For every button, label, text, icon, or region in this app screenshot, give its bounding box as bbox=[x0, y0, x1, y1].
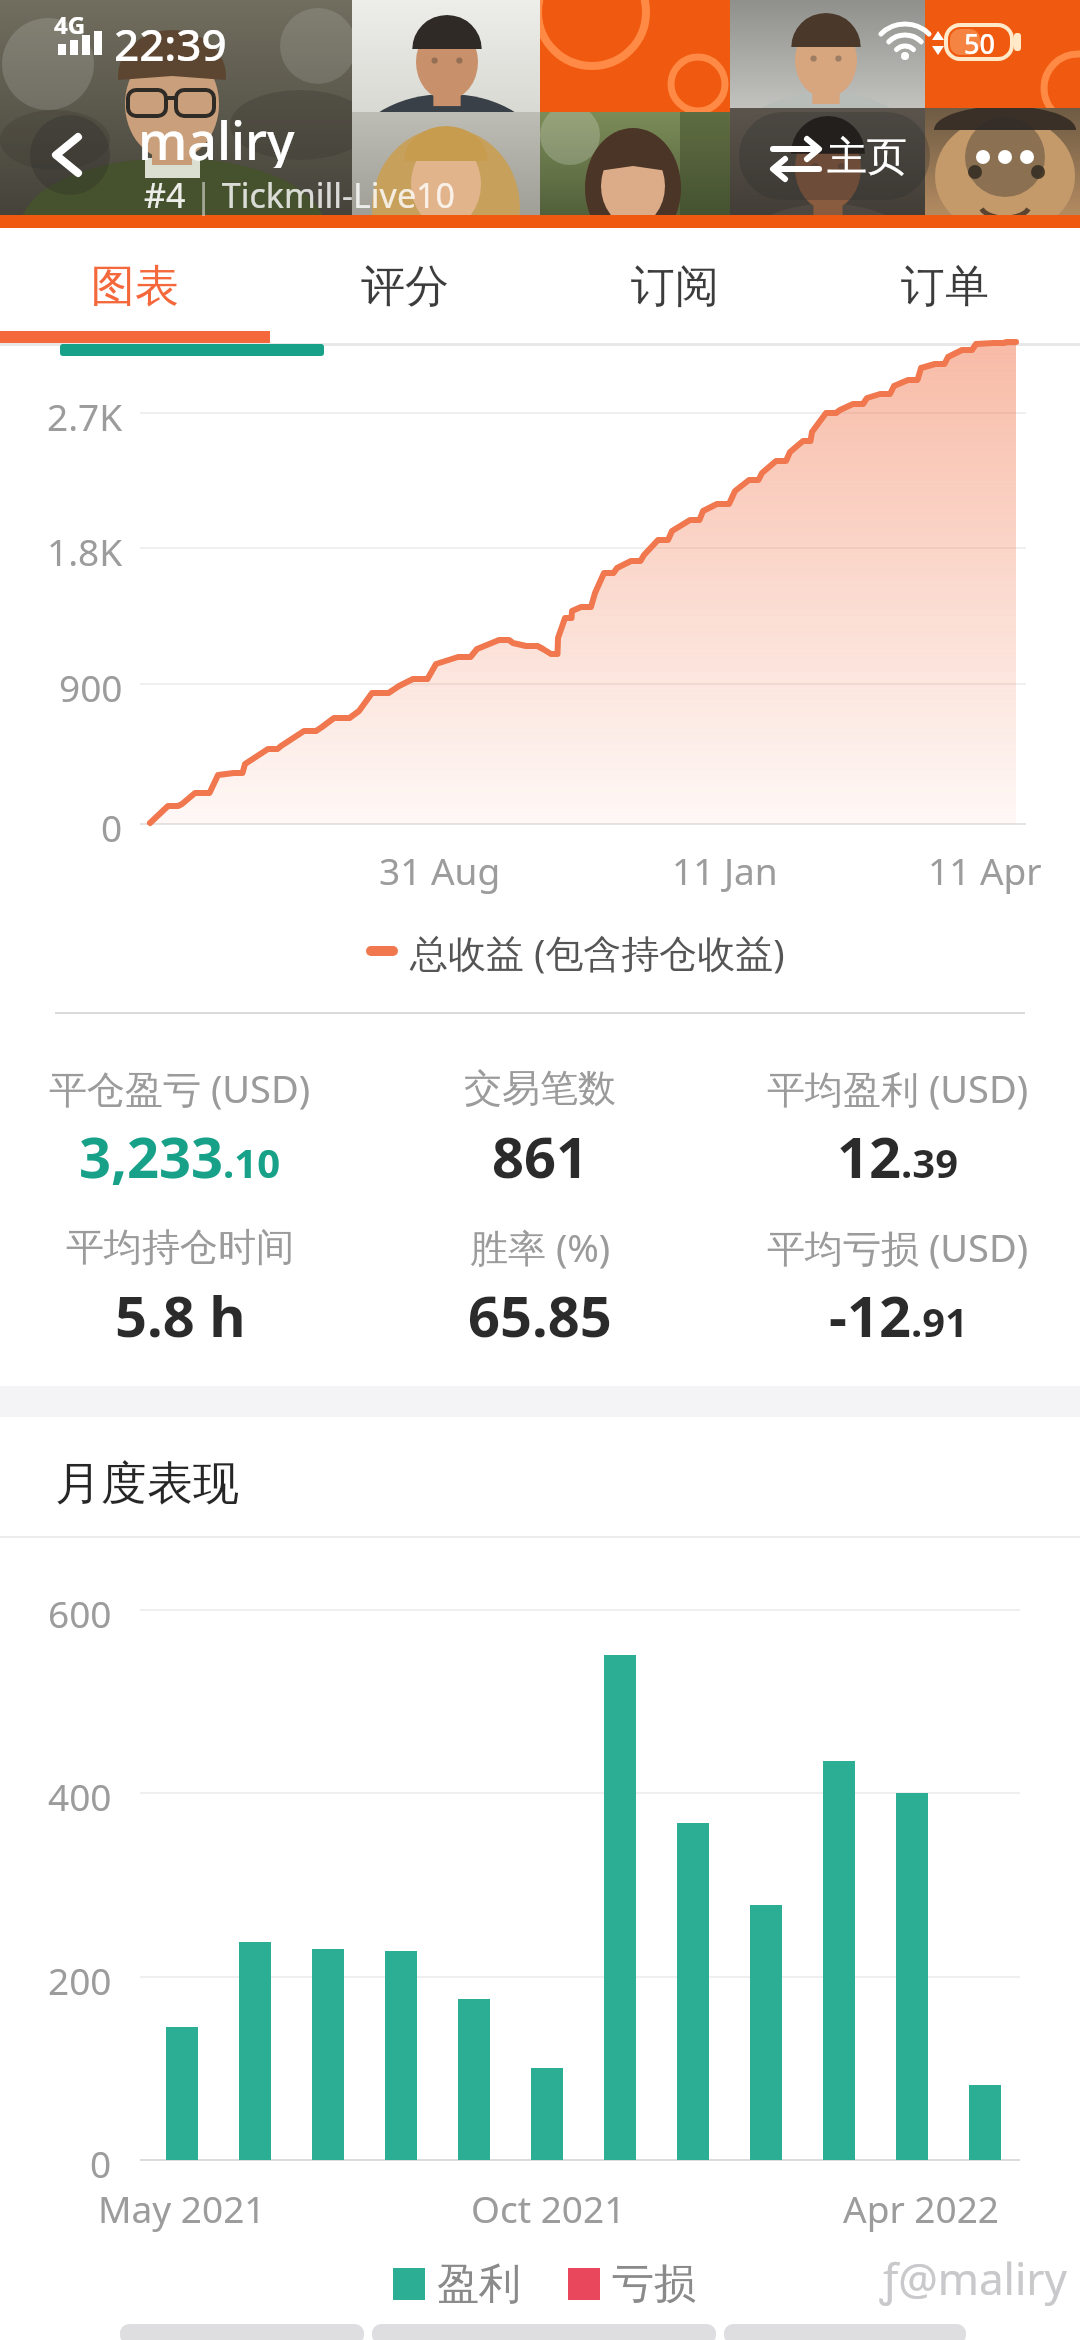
staticText: 200 bbox=[48, 1955, 112, 1999]
staticText: 盈利 bbox=[437, 2258, 521, 2308]
staticText: 主页 bbox=[827, 131, 907, 181]
staticText: #4 | Tickmill-Live10 bbox=[144, 172, 455, 216]
button[interactable]: 图表 bbox=[0, 240, 270, 332]
button[interactable]: 评分 bbox=[270, 240, 540, 332]
button[interactable] bbox=[965, 117, 1045, 197]
staticText: 2.7K bbox=[47, 391, 123, 435]
staticText: Oct 2021 bbox=[471, 2183, 626, 2233]
staticText: 0 bbox=[90, 2138, 112, 2182]
staticText: 22:39 bbox=[114, 14, 227, 70]
staticText: 1.8K bbox=[47, 526, 123, 570]
staticText: 订单 bbox=[901, 259, 989, 314]
staticText: 平仓盈亏 (USD) bbox=[49, 1062, 311, 1114]
staticText: 平均亏损 (USD) bbox=[767, 1221, 1029, 1273]
button[interactable]: 订单 bbox=[810, 240, 1080, 332]
staticText: 31 Aug bbox=[379, 845, 501, 895]
staticText: maliry bbox=[138, 104, 295, 168]
staticText: 600 bbox=[48, 1588, 112, 1632]
staticText: 月度表现 bbox=[55, 1455, 239, 1513]
staticText: 12.39 bbox=[837, 1118, 959, 1188]
staticText: 861 bbox=[492, 1118, 589, 1188]
staticText: ƒ@maliry bbox=[880, 2248, 1067, 2308]
staticText: 50 bbox=[964, 25, 995, 59]
staticText: 11 Apr bbox=[928, 845, 1042, 895]
staticText: 11 Jan bbox=[672, 845, 778, 895]
staticText: 胜率 (%) bbox=[470, 1221, 611, 1273]
staticText: -12.91 bbox=[829, 1277, 968, 1347]
staticText: 交易笔数 bbox=[464, 1064, 616, 1112]
staticText: 平均盈利 (USD) bbox=[767, 1062, 1029, 1114]
button[interactable] bbox=[30, 115, 110, 195]
staticText: Apr 2022 bbox=[843, 2183, 999, 2233]
staticText: 900 bbox=[59, 662, 123, 706]
staticText: 图表 bbox=[91, 259, 179, 314]
staticText: 评分 bbox=[361, 259, 449, 314]
staticText: 3,233.10 bbox=[79, 1118, 281, 1188]
button[interactable]: 订阅 bbox=[540, 240, 810, 332]
staticText: 5.8 h bbox=[115, 1277, 246, 1347]
staticText: May 2021 bbox=[98, 2183, 266, 2233]
staticText: 亏损 bbox=[612, 2258, 696, 2308]
button[interactable]: 主页 bbox=[739, 112, 930, 200]
staticText: 订阅 bbox=[631, 259, 719, 314]
staticText: 4G bbox=[54, 8, 86, 36]
staticText: 0 bbox=[101, 802, 123, 846]
staticText: 65.85 bbox=[468, 1277, 612, 1347]
staticText: 400 bbox=[48, 1771, 112, 1815]
staticText: 平均持仓时间 bbox=[66, 1223, 294, 1271]
staticText: 总收益 (包含持仓收益) bbox=[410, 926, 785, 978]
